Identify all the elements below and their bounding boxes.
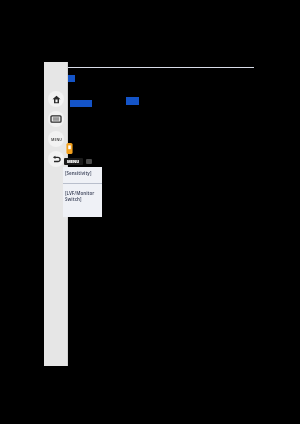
staticText: MENU [51,137,62,142]
button[interactable]: Menu [48,131,64,147]
staticText: [Sensitivity] [65,170,92,176]
other: Function key [65,143,74,154]
button[interactable]: Back [48,151,64,167]
staticText: MENU [67,159,80,164]
button[interactable]: Monitor [48,111,64,127]
button[interactable]: Home [48,91,64,107]
button[interactable]: MENU [64,158,83,165]
button[interactable]: [Sensitivity] [63,167,102,217]
staticText: [LVF/Monitor Switch] [65,190,95,202]
